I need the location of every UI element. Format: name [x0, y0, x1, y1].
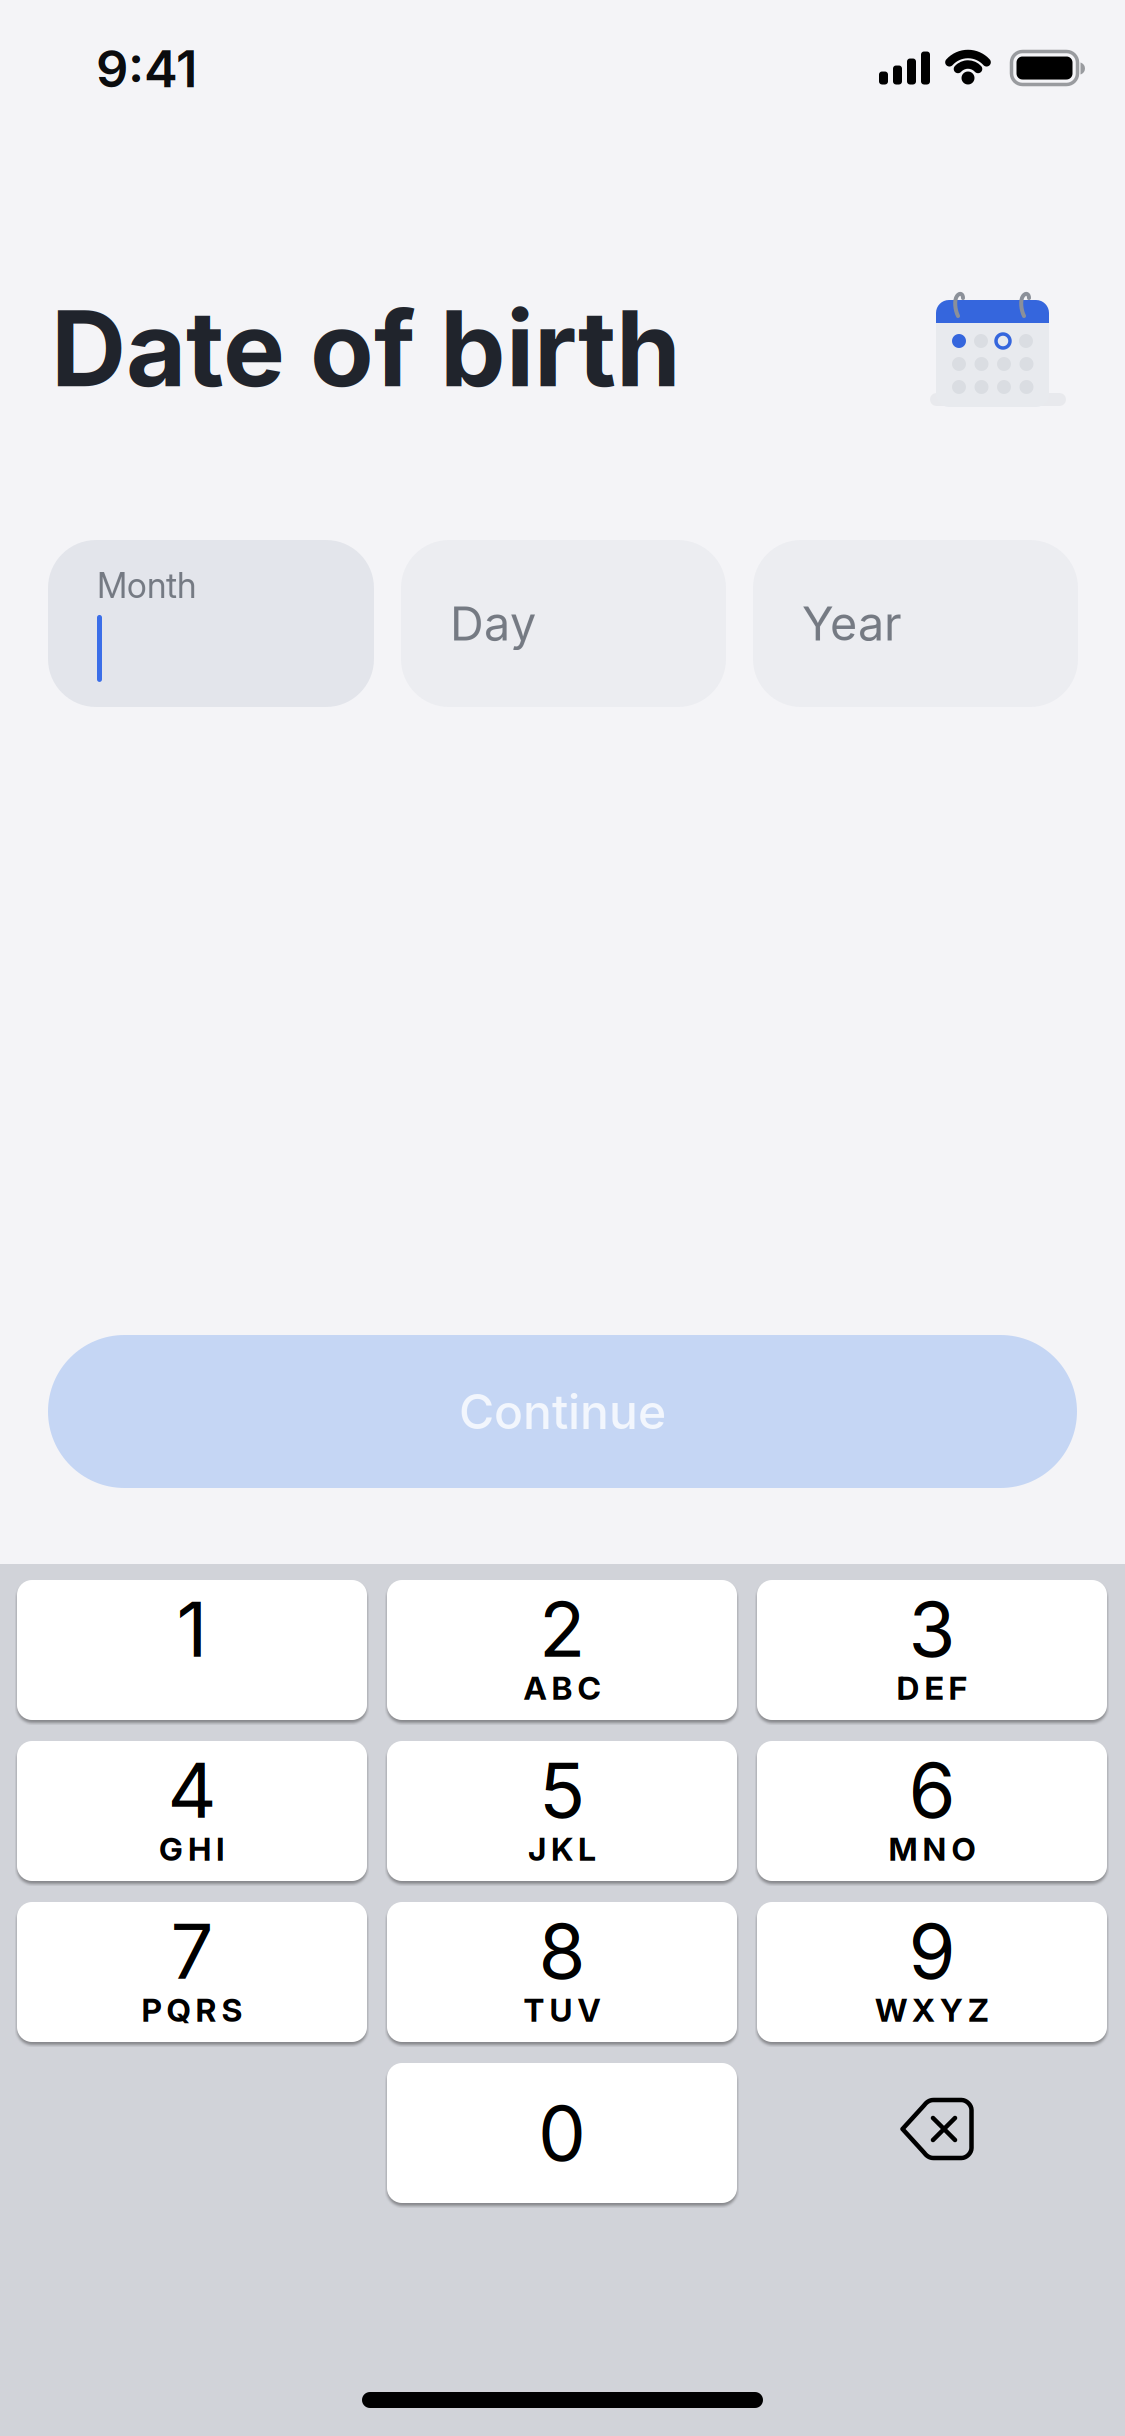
button[interactable]: 6: [757, 1741, 1107, 1881]
staticText: 0: [538, 2088, 586, 2178]
button[interactable]: 7: [17, 1902, 367, 2042]
staticText: 4: [167, 1745, 216, 1835]
button[interactable]: 9: [757, 1902, 1107, 2042]
staticText: 5: [539, 1745, 585, 1835]
staticText: Year: [802, 596, 902, 651]
button[interactable]: Continue: [48, 1335, 1077, 1488]
staticText: ABC: [523, 1669, 600, 1707]
staticText: 3: [908, 1584, 955, 1674]
staticText: 8: [538, 1906, 585, 1996]
staticText: DEF: [896, 1669, 967, 1707]
button[interactable]: 2: [387, 1580, 737, 1720]
button[interactable]: 3: [757, 1580, 1107, 1720]
staticText: 9: [908, 1906, 955, 1996]
staticText: GHI: [159, 1830, 225, 1868]
staticText: 6: [908, 1745, 955, 1835]
staticText: Day: [450, 596, 536, 651]
staticText: 7: [170, 1906, 213, 1996]
staticText: MNO: [888, 1830, 975, 1868]
staticText: TUV: [523, 1991, 600, 2029]
button[interactable]: Delete: [757, 2063, 1107, 2203]
button[interactable]: 0: [387, 2063, 737, 2203]
button[interactable]: 4: [17, 1741, 367, 1881]
staticText: PQRS: [141, 1991, 242, 2029]
staticText: Continue: [459, 1383, 666, 1440]
staticText: WXYZ: [875, 1991, 989, 2029]
button[interactable]: Year: [753, 540, 1078, 707]
button[interactable]: 8: [387, 1902, 737, 2042]
staticText: Date of birth: [51, 287, 681, 410]
staticText: 9:41: [96, 39, 197, 99]
staticText: 1: [176, 1584, 207, 1674]
staticText: Month: [97, 565, 196, 606]
staticText: 2: [539, 1584, 585, 1674]
button[interactable]: Month: [48, 540, 374, 707]
button[interactable]: 5: [387, 1741, 737, 1881]
staticText: JKL: [528, 1830, 596, 1868]
button[interactable]: Day: [401, 540, 726, 707]
button[interactable]: 1: [17, 1580, 367, 1720]
